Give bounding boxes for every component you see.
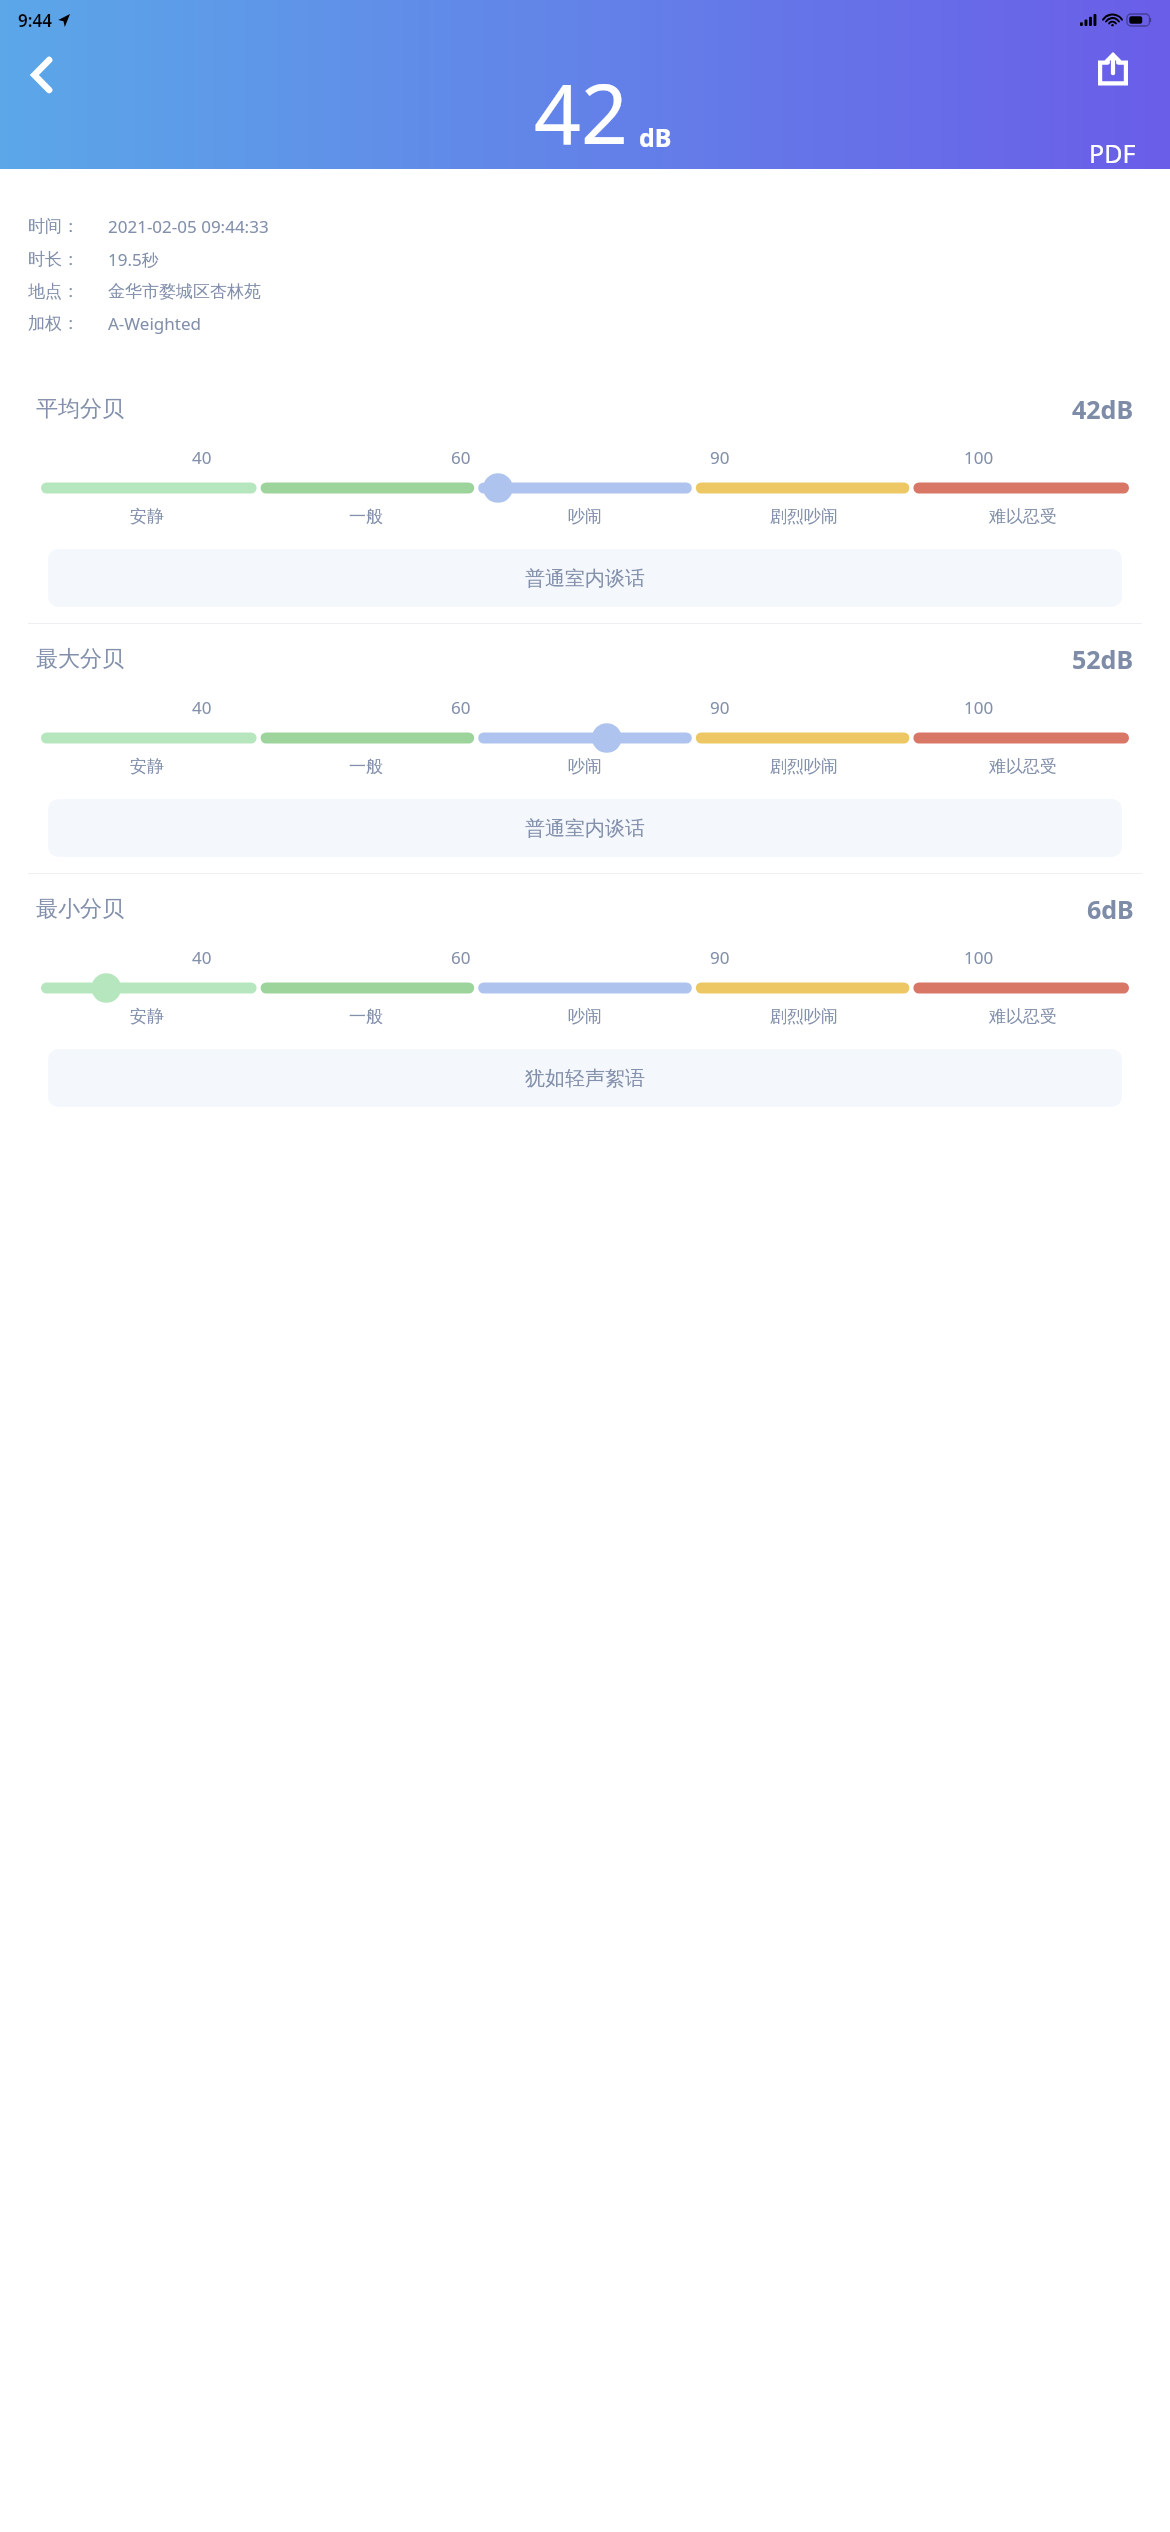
staticText: 平均分贝 [36,395,124,423]
staticText: 吵闹 [568,756,602,777]
staticText: 普通室内谈话 [525,566,645,591]
button[interactable]: 犹如轻声絮语 [48,1049,1122,1107]
staticText: 90 [710,946,730,969]
staticText: 90 [710,446,730,469]
staticText: A-Weighted [108,312,201,335]
staticText: 普通室内谈话 [525,816,645,841]
staticText: 安静 [130,1006,164,1027]
staticText: 一般 [349,756,383,777]
staticText: 时间： [28,216,108,237]
staticText: 100 [964,946,994,969]
staticText: 19.5秒 [108,248,159,271]
staticText: 地点： [28,281,108,302]
staticText: 40 [192,446,212,469]
staticText: 52dB [1072,642,1134,676]
staticText: 时长： [28,249,108,270]
staticText: 42 [534,56,628,168]
staticText: 90 [710,696,730,719]
staticText: 60 [451,696,471,719]
button[interactable]: 普通室内谈话 [48,549,1122,607]
staticText: 剧烈吵闹 [770,1006,838,1027]
staticText: 剧烈吵闹 [770,756,838,777]
staticText: 100 [964,696,994,719]
staticText: 难以忍受 [989,1006,1057,1027]
staticText: 40 [192,696,212,719]
button[interactable]: Share [1090,46,1136,92]
staticText: 犹如轻声絮语 [525,1066,645,1091]
staticText: PDF [1089,136,1136,167]
staticText: 加权： [28,313,108,334]
staticText: 60 [451,946,471,969]
staticText: 吵闹 [568,1006,602,1027]
staticText: 安静 [130,756,164,777]
staticText: 42dB [1072,392,1134,426]
button[interactable]: 普通室内谈话 [48,799,1122,857]
staticText: 最小分贝 [36,895,124,923]
staticText: 40 [192,946,212,969]
staticText: 一般 [349,506,383,527]
staticText: 100 [964,446,994,469]
staticText: 9:44 [18,9,52,32]
staticText: 吵闹 [568,506,602,527]
staticText: 2021-02-05 09:44:33 [108,215,269,238]
button[interactable]: Back [14,48,68,102]
staticText: 6dB [1087,892,1134,926]
staticText: 金华市婺城区杏林苑 [108,281,261,302]
staticText: 难以忍受 [989,756,1057,777]
staticText: 一般 [349,1006,383,1027]
staticText: 剧烈吵闹 [770,506,838,527]
staticText: dB [639,120,672,154]
staticText: 最大分贝 [36,645,124,673]
staticText: 60 [451,446,471,469]
staticText: 安静 [130,506,164,527]
staticText: 难以忍受 [989,506,1057,527]
button[interactable]: PDF [1085,134,1140,169]
